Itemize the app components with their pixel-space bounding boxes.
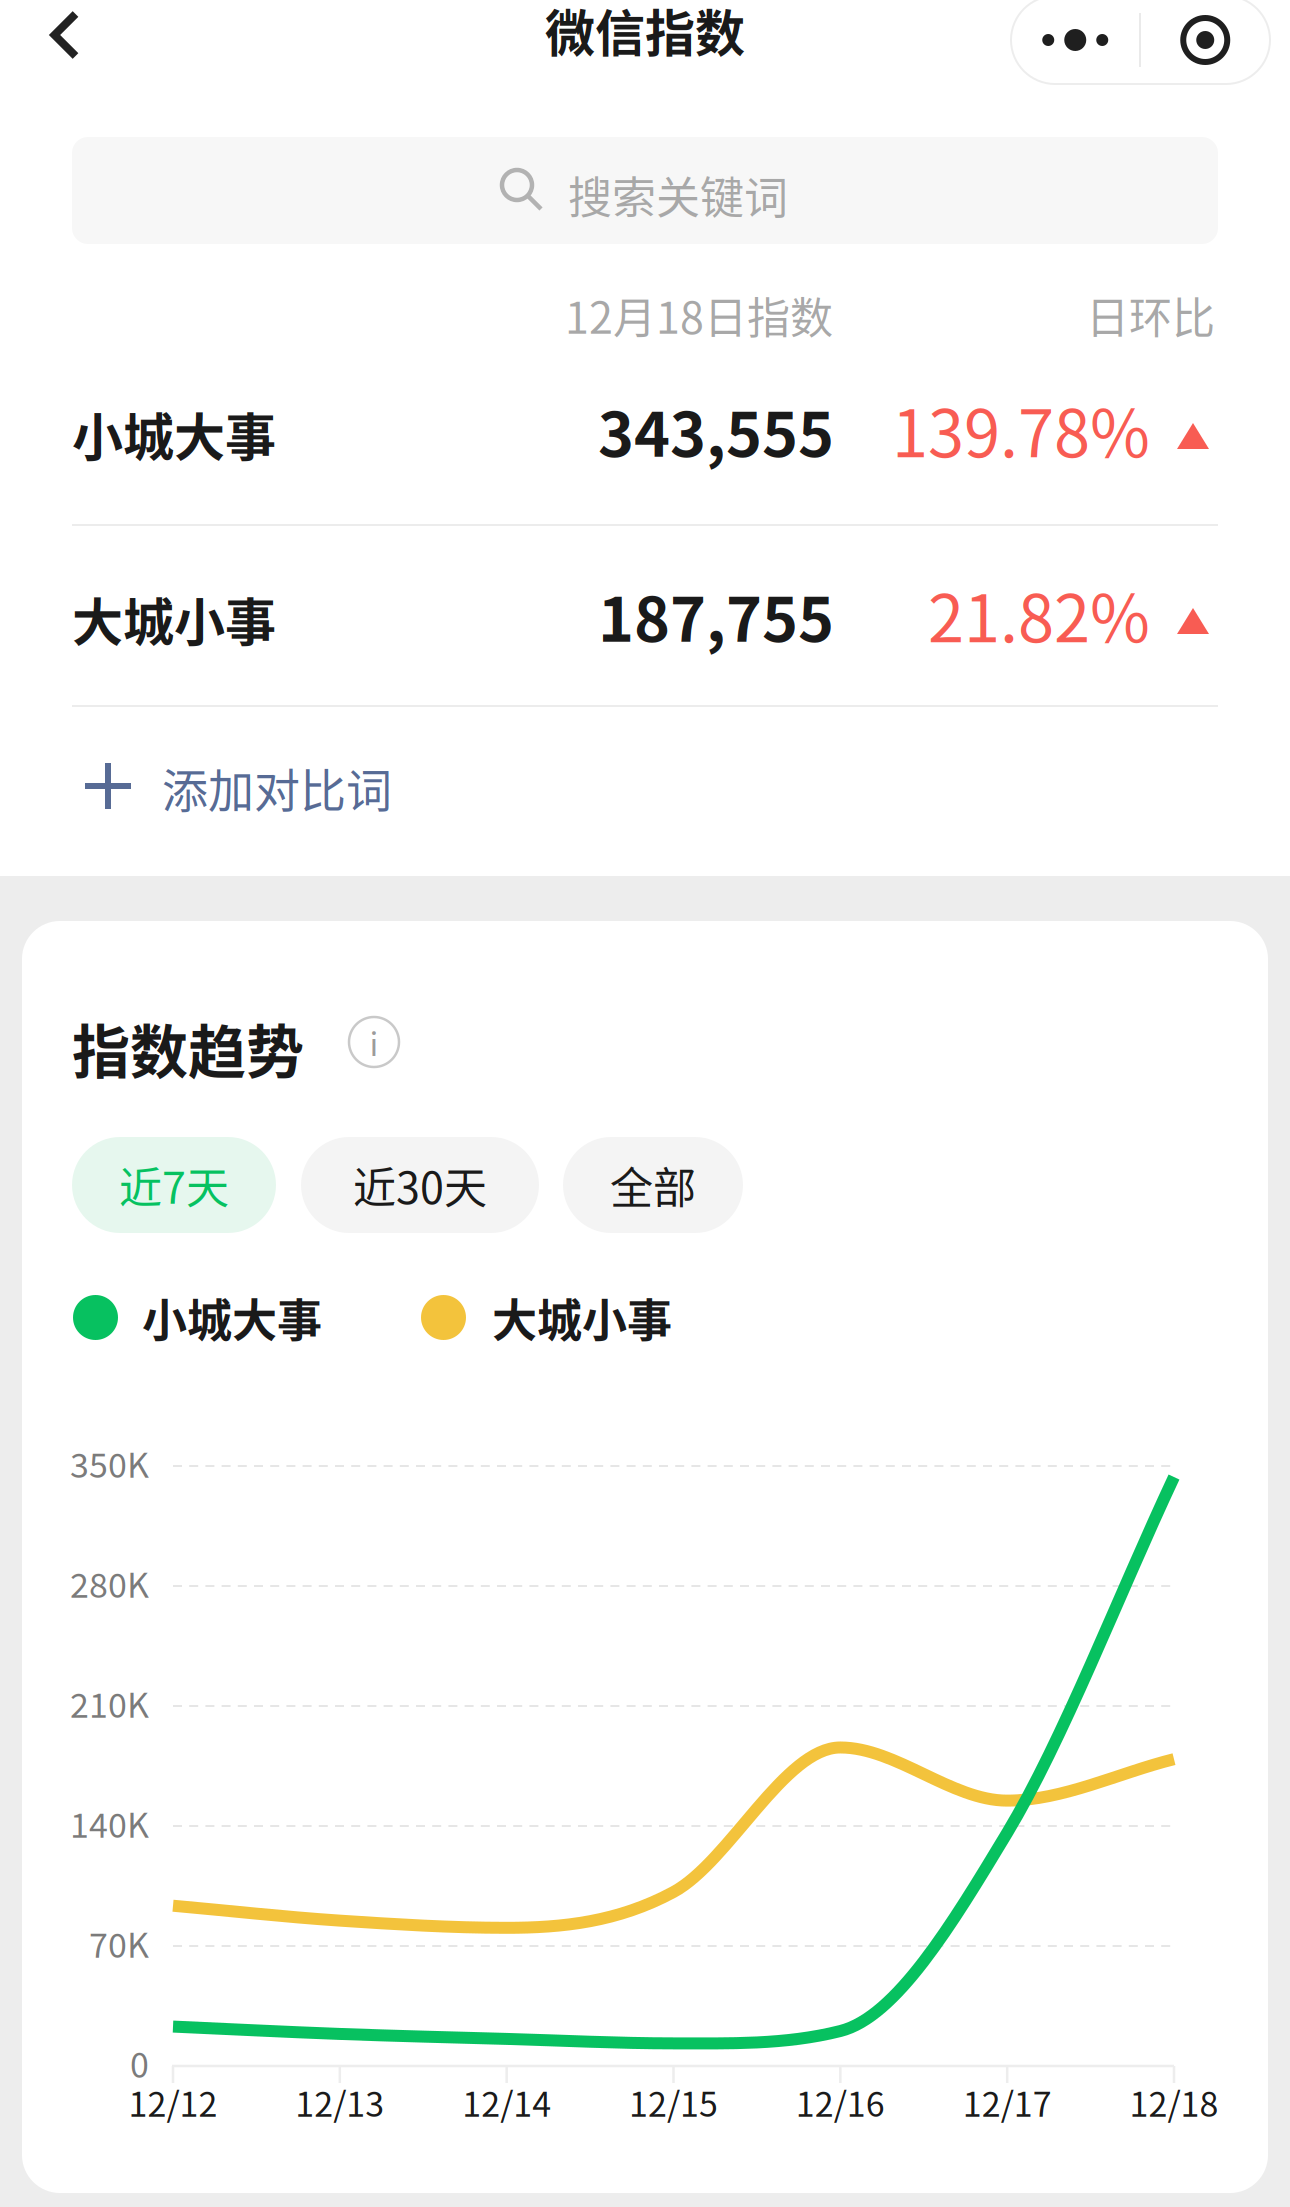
staticText: 210K (70, 1678, 149, 1728)
button[interactable]: 近7天 (72, 1137, 276, 1233)
staticText: 140K (70, 1798, 149, 1848)
staticText: 21.82% (928, 567, 1150, 661)
staticText: 大城小事 (72, 582, 276, 656)
button[interactable]: 搜索关键词 (72, 137, 1218, 244)
staticText: 近7天 (119, 1154, 229, 1216)
staticText: 187,755 (598, 571, 834, 659)
staticText: 350K (70, 1438, 149, 1488)
button[interactable]: 添加对比词 (72, 726, 1218, 846)
staticText: 12/18 (1129, 2077, 1218, 2127)
staticText: i (369, 1019, 378, 1065)
staticText: 139.78% (892, 382, 1150, 476)
staticText: 添加对比词 (162, 754, 392, 821)
staticText: 全部 (610, 1154, 696, 1216)
staticText: 指数趋势 (72, 1006, 304, 1090)
button[interactable] (72, 560, 1218, 690)
button[interactable]: Close mini program (1141, 0, 1270, 84)
staticText: 12月18日指数 (565, 284, 833, 346)
button[interactable]: More (1011, 0, 1139, 84)
staticText: 12/16 (796, 2077, 885, 2127)
button[interactable]: About index trends (348, 1016, 400, 1068)
staticText: 12/17 (963, 2077, 1052, 2127)
staticText: 搜索关键词 (568, 163, 788, 227)
staticText: 12/12 (128, 2077, 217, 2127)
staticText: 12/14 (462, 2077, 551, 2127)
button[interactable]: 全部 (563, 1137, 743, 1233)
staticText: 343,555 (598, 386, 834, 474)
staticText: 小城大事 (72, 397, 276, 471)
button[interactable]: Back (17, 3, 113, 67)
staticText: 微信指数 (545, 0, 745, 66)
staticText: 70K (89, 1918, 149, 1968)
staticText: 12/13 (295, 2077, 384, 2127)
button[interactable]: 近30天 (301, 1137, 539, 1233)
staticText: 近30天 (353, 1154, 487, 1216)
staticText: 0 (130, 2038, 149, 2088)
button[interactable] (72, 382, 1218, 524)
staticText: 12/15 (629, 2077, 718, 2127)
staticText: 大城小事 (492, 1285, 672, 1350)
staticText: 小城大事 (142, 1285, 322, 1350)
staticText: 280K (70, 1558, 149, 1608)
staticText: 日环比 (1086, 284, 1215, 346)
